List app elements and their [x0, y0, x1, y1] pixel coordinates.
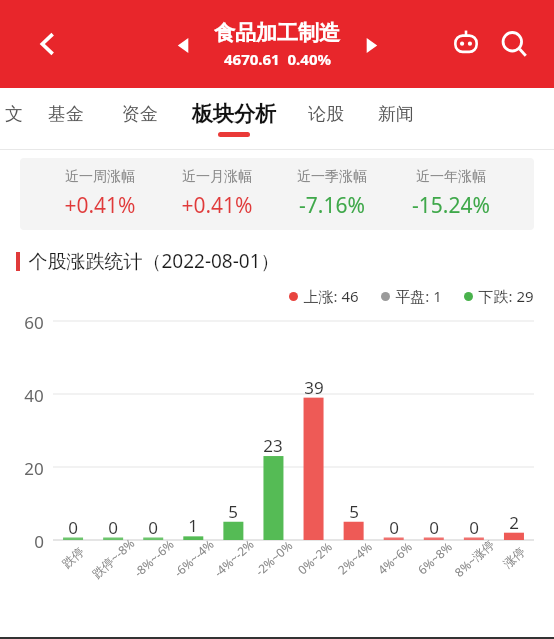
button[interactable]: Search	[492, 22, 536, 66]
staticText: -4%~-2%	[210, 536, 257, 580]
staticText: 0	[68, 516, 78, 539]
staticText: -8%~-6%	[130, 536, 177, 580]
staticText: 0	[108, 516, 118, 539]
staticText: 涨停	[500, 544, 528, 571]
staticText: -6%~-4%	[170, 536, 217, 580]
staticText: 近一季涨幅	[297, 168, 367, 186]
staticText: 40	[24, 384, 44, 407]
staticText: 新闻	[378, 103, 414, 126]
staticText: 0	[148, 516, 158, 539]
button[interactable]: 论股	[306, 103, 346, 136]
staticText: 4%~6%	[374, 538, 415, 578]
staticText: 20	[24, 457, 44, 480]
staticText: +0.41%	[181, 191, 253, 220]
staticText: 近一月涨幅	[182, 168, 252, 186]
staticText: 个股涨跌统计（2022-08-01）	[28, 248, 280, 274]
staticText: 资金	[122, 103, 158, 126]
staticText: 近一年涨幅	[416, 168, 486, 186]
staticText: 板块分析	[192, 101, 276, 127]
staticText: 基金	[48, 103, 84, 126]
button[interactable]: Previous sector	[166, 28, 200, 62]
button[interactable]: Assistant bot	[444, 22, 488, 66]
staticText: 下跌: 29	[478, 286, 534, 306]
staticText: 5	[349, 500, 359, 523]
staticText: 0	[34, 530, 44, 553]
staticText: 2	[509, 511, 519, 534]
staticText: 8%~涨停	[451, 536, 497, 580]
staticText: 0	[389, 516, 399, 539]
staticText: 平盘: 1	[395, 286, 442, 306]
button[interactable]: Next sector	[354, 28, 388, 62]
staticText: 6%~8%	[414, 538, 455, 578]
staticText: 0%~2%	[294, 538, 335, 578]
staticText: 5	[228, 500, 238, 523]
staticText: -15.24%	[412, 191, 490, 220]
button[interactable]: Back	[26, 22, 70, 66]
staticText: -7.16%	[299, 191, 365, 220]
staticText: 论股	[308, 103, 344, 126]
staticText: 近一周涨幅	[65, 168, 135, 186]
button[interactable]: 文	[2, 103, 26, 136]
staticText: 跌停~-8%	[88, 535, 138, 581]
staticText: 0	[469, 516, 479, 539]
staticText: 4670.61 0.40%	[224, 49, 331, 69]
staticText: 文	[5, 103, 23, 126]
staticText: 跌停	[59, 544, 87, 571]
staticText: 1	[188, 514, 198, 537]
staticText: 23	[263, 434, 283, 457]
button[interactable]: 资金	[120, 103, 160, 136]
staticText: -2%~0%	[251, 537, 295, 579]
button[interactable]: 新闻	[376, 103, 416, 136]
staticText: 2%~4%	[334, 538, 375, 578]
staticText: 60	[24, 311, 44, 334]
staticText: 0	[429, 516, 439, 539]
staticText: 39	[304, 376, 324, 399]
staticText: 食品加工制造	[214, 20, 340, 46]
button[interactable]: 基金	[46, 103, 86, 136]
button[interactable]: 近一周涨幅	[20, 168, 534, 220]
button[interactable]: 板块分析	[190, 101, 278, 137]
staticText: 上涨: 46	[303, 286, 359, 306]
staticText: +0.41%	[64, 191, 136, 220]
